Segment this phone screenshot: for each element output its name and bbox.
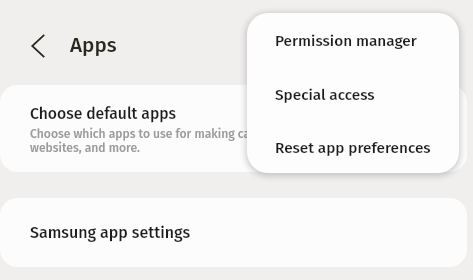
- staticText: Special access: [275, 86, 375, 104]
- button[interactable]: Choose default apps: [0, 85, 467, 172]
- button[interactable]: Permission manager: [247, 14, 459, 68]
- button[interactable]: Reset app preferences: [247, 122, 459, 173]
- button[interactable]: Navigate up: [19, 27, 56, 64]
- button[interactable]: Apps: [64, 27, 117, 64]
- button[interactable]: Special access: [247, 68, 459, 122]
- button[interactable]: Samsung app settings: [0, 198, 467, 267]
- staticText: Choose default apps: [30, 104, 177, 123]
- staticText: Choose which apps to use for making call…: [30, 127, 450, 155]
- staticText: Permission manager: [275, 32, 417, 50]
- staticText: Reset app preferences: [275, 139, 431, 157]
- staticText: Samsung app settings: [30, 223, 191, 242]
- staticText: Apps: [70, 33, 117, 58]
